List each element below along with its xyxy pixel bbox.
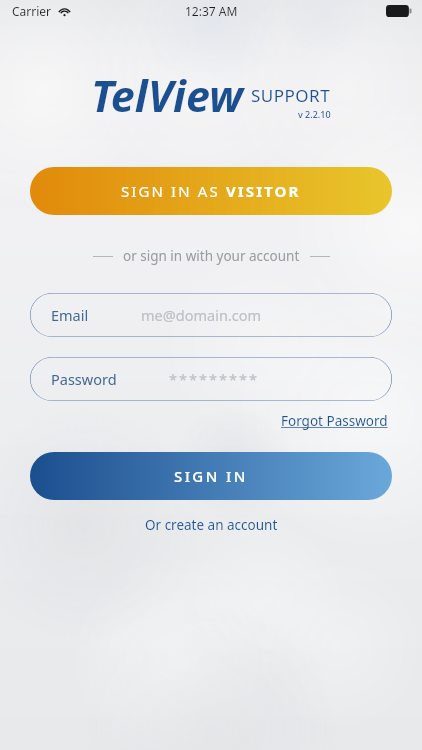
- button[interactable]: SIGN IN: [30, 452, 392, 500]
- staticText: Carrier: [12, 3, 52, 19]
- button[interactable]: Password: [30, 357, 392, 401]
- button[interactable]: Or create an account: [137, 512, 286, 538]
- button[interactable]: SIGN IN AS: [30, 167, 392, 215]
- other: Battery full: [386, 5, 412, 17]
- other: Wi-Fi signal: [58, 5, 71, 18]
- button[interactable]: Forgot Password: [277, 409, 392, 433]
- staticText: SIGN IN: [174, 466, 248, 486]
- staticText: TelView: [91, 66, 243, 125]
- staticText: me@domain.com: [141, 305, 262, 325]
- staticText: Password: [51, 369, 117, 389]
- staticText: Email: [51, 305, 89, 325]
- staticText: or sign in with your account: [123, 247, 300, 265]
- staticText: Forgot Password: [281, 412, 388, 430]
- staticText: 12:37 AM: [185, 3, 238, 19]
- staticText: SUPPORT: [251, 84, 331, 107]
- staticText: *********: [169, 369, 259, 389]
- button[interactable]: Email: [30, 293, 392, 337]
- staticText: Or create an account: [145, 516, 278, 534]
- staticText: v 2.2.10: [298, 108, 331, 120]
- staticText: VISITOR: [226, 181, 301, 201]
- staticText: SIGN IN AS: [121, 181, 226, 201]
